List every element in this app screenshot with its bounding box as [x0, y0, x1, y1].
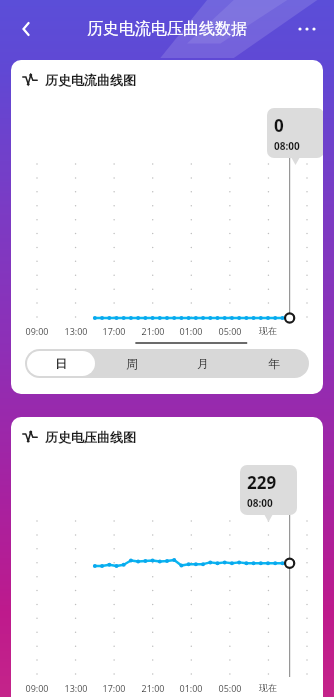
staticText: 现在	[250, 682, 286, 693]
staticText: 13:00	[58, 325, 94, 337]
staticText: 17:00	[96, 682, 132, 694]
staticText: 09:00	[19, 682, 55, 694]
staticText: 21:00	[135, 682, 171, 694]
staticText: 05:00	[212, 325, 248, 337]
staticText: 21:00	[135, 325, 171, 337]
staticText: 13:00	[58, 682, 94, 694]
staticText: 年	[268, 356, 280, 371]
staticText: 周	[126, 356, 138, 371]
button[interactable]: More options	[286, 8, 328, 50]
button[interactable]: 周	[96, 349, 167, 378]
staticText: 09:00	[19, 325, 55, 337]
staticText: 05:00	[212, 682, 248, 694]
staticText: 08:00	[247, 496, 273, 510]
button[interactable]: Back	[6, 8, 48, 50]
staticText: 08:00	[274, 139, 300, 153]
staticText: 历史电压曲线图	[45, 429, 136, 445]
staticText: 17:00	[96, 325, 132, 337]
staticText: 现在	[250, 325, 286, 336]
button[interactable]: 年	[238, 349, 309, 378]
button[interactable]: 日	[25, 349, 96, 378]
staticText: 历史电流电压曲线数据	[87, 19, 247, 39]
staticText: 历史电流曲线图	[45, 72, 136, 88]
staticText: 229	[247, 471, 277, 494]
staticText: 日	[55, 356, 67, 371]
staticText: 01:00	[173, 682, 209, 694]
staticText: 0	[274, 114, 284, 137]
staticText: 月	[197, 356, 209, 371]
button[interactable]: 月	[167, 349, 238, 378]
staticText: 01:00	[173, 325, 209, 337]
